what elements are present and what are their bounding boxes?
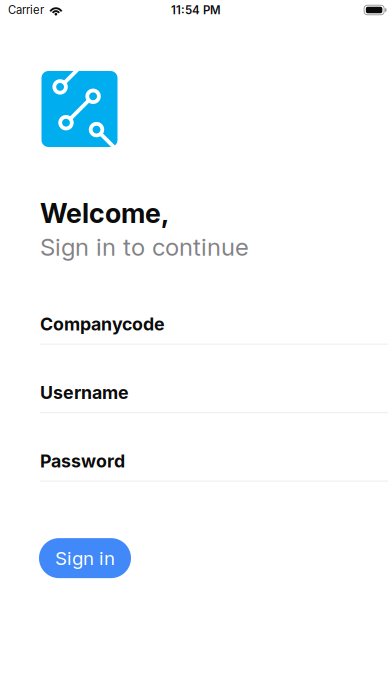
button[interactable]: Sign in (39, 538, 131, 578)
staticText: Sign in (55, 547, 115, 569)
staticText: Companycode (40, 313, 165, 335)
button[interactable]: Companycode (40, 315, 388, 345)
button[interactable]: Password (40, 452, 388, 482)
staticText: Welcome, (40, 197, 169, 230)
staticText: 11:54 PM (171, 3, 221, 17)
button[interactable]: Username (40, 383, 388, 413)
staticText: Username (40, 382, 129, 403)
staticText: Password (40, 450, 125, 472)
staticText: Carrier (8, 3, 44, 17)
staticText: Sign in to continue (40, 233, 249, 262)
